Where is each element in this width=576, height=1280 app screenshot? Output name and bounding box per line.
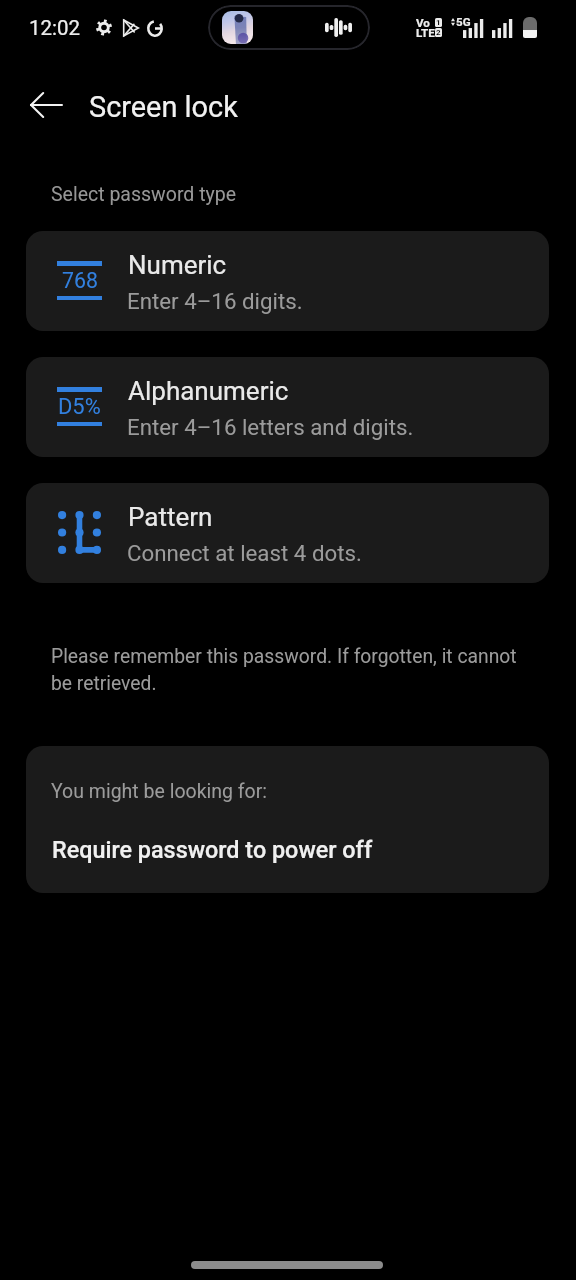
- staticText: D5%: [58, 394, 101, 420]
- button[interactable]: 768: [26, 231, 549, 331]
- button[interactable]: You might be looking for:: [26, 746, 549, 893]
- staticText: Require password to power off: [52, 836, 373, 863]
- staticText: Please remember this password. If forgot…: [51, 645, 529, 695]
- staticText: Connect at least 4 dots.: [127, 540, 362, 566]
- staticText: 5G: [456, 15, 471, 29]
- staticText: 12:02: [29, 16, 81, 40]
- staticText: 768: [62, 268, 98, 293]
- staticText: Screen lock: [89, 90, 238, 124]
- staticText: Vo: [416, 16, 430, 30]
- staticText: 1: [436, 18, 441, 27]
- button[interactable]: D5%: [26, 357, 549, 457]
- button[interactable]: Back: [22, 81, 70, 129]
- staticText: Numeric: [128, 250, 227, 280]
- staticText: LTE: [416, 26, 435, 40]
- staticText: Enter 4–16 digits.: [127, 288, 303, 314]
- staticText: Pattern: [128, 502, 213, 532]
- staticText: Select password type: [51, 183, 237, 206]
- staticText: 2: [436, 28, 441, 37]
- staticText: Alphanumeric: [128, 376, 289, 406]
- button[interactable]: Pattern: [26, 483, 549, 583]
- staticText: You might be looking for:: [51, 780, 268, 803]
- staticText: Enter 4–16 letters and digits.: [127, 414, 414, 440]
